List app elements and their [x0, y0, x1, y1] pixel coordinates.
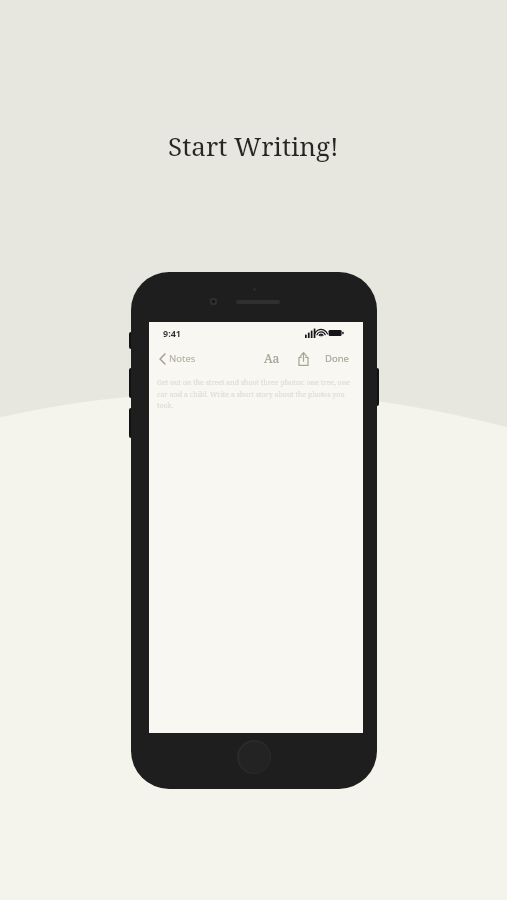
staticText: Done [325, 352, 349, 365]
button[interactable]: Done [322, 350, 352, 367]
button[interactable]: Share [295, 350, 312, 367]
staticText: Aa [264, 350, 280, 366]
button[interactable]: Aa [260, 348, 284, 368]
staticText: Notes [169, 352, 196, 365]
staticText: Get out on the street and shoot three ph… [157, 378, 353, 410]
staticText: Start Writing! [168, 128, 339, 163]
button[interactable]: Notes [156, 349, 199, 368]
staticText: 9:41 [163, 327, 181, 339]
